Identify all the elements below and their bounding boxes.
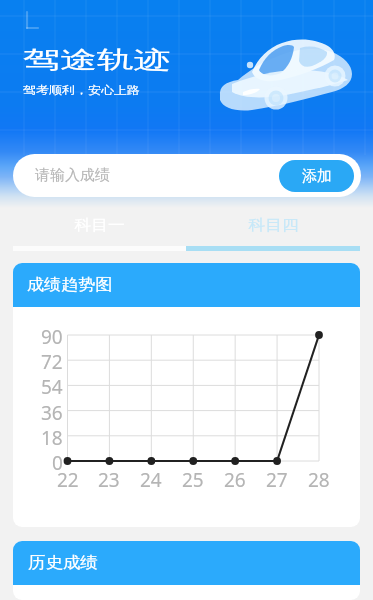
button[interactable]: 添加 bbox=[279, 160, 354, 192]
staticText: 添加 bbox=[302, 167, 332, 186]
staticText: 27 bbox=[266, 467, 288, 493]
staticText: 28 bbox=[308, 467, 330, 493]
staticText: 26 bbox=[224, 467, 246, 493]
staticText: 科目一 bbox=[74, 216, 125, 235]
staticText: 0 bbox=[52, 450, 63, 476]
staticText: 36 bbox=[41, 400, 63, 426]
staticText: 54 bbox=[41, 374, 63, 400]
staticText: 25 bbox=[182, 467, 204, 493]
staticText: 请输入成绩 bbox=[35, 166, 279, 185]
staticText: 24 bbox=[140, 467, 162, 493]
staticText: 72 bbox=[41, 349, 63, 375]
staticText: 科目四 bbox=[248, 216, 299, 235]
staticText: 22 bbox=[57, 467, 79, 493]
staticText: 驾途轨迹 bbox=[23, 45, 171, 75]
staticText: 历史成绩 bbox=[28, 553, 98, 573]
button[interactable]: 科目四 bbox=[186, 216, 360, 251]
staticText: 23 bbox=[98, 467, 120, 493]
staticText: 驾考顺利，安心上路 bbox=[23, 83, 140, 97]
staticText: 18 bbox=[41, 425, 63, 451]
staticText: 90 bbox=[41, 324, 63, 350]
button[interactable]: 科目一 bbox=[13, 216, 186, 251]
staticText: 成绩趋势图 bbox=[27, 275, 113, 295]
